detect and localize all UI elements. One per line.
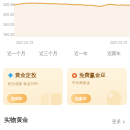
button[interactable]: 更多 — [112, 119, 126, 125]
staticText: 近一个月 — [7, 51, 26, 57]
staticText: 260.00 — [3, 22, 15, 27]
staticText: 黄金定投 — [15, 72, 37, 79]
staticText: 实物黄金 — [4, 116, 29, 124]
staticText: 300.00 — [3, 12, 15, 17]
other: More — [122, 120, 126, 124]
staticText: 近三个月 — [39, 51, 58, 57]
staticText: 2021-02-19 — [110, 40, 128, 44]
button[interactable]: 免费赢金豆 — [67, 68, 127, 105]
button[interactable]: 去定投 — [7, 94, 27, 103]
staticText: 积少成多 黄金万利 — [8, 81, 38, 86]
staticText: 近两年 — [107, 51, 121, 57]
staticText: 近一年 — [74, 51, 88, 57]
staticText: 180.00 — [3, 32, 15, 37]
staticText: 去参与 — [75, 96, 87, 101]
button[interactable]: 去参与 — [71, 94, 91, 103]
staticText: 2021-02-19 — [16, 40, 34, 44]
staticText: 可兑换黄金 — [72, 81, 90, 86]
staticText: 更多 — [112, 119, 121, 125]
staticText: 免费赢金豆 — [79, 72, 106, 79]
button[interactable]: 黄金定投 — [3, 68, 63, 105]
button[interactable]: 近两年 — [97, 49, 130, 58]
button[interactable]: 近一个月 — [0, 49, 32, 58]
staticText: 去定投 — [11, 96, 23, 101]
button[interactable]: 近三个月 — [32, 49, 64, 58]
staticText: 340.00 — [3, 2, 15, 7]
button[interactable]: 近一年 — [64, 49, 97, 58]
